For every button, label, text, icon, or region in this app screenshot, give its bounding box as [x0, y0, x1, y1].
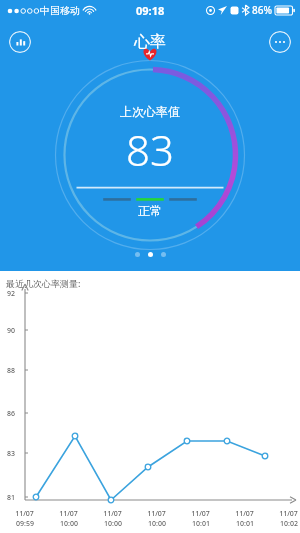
staticText: 86%	[252, 3, 272, 17]
staticText: 11/07	[235, 509, 254, 519]
button[interactable]: More options	[269, 31, 291, 53]
staticText: 88	[7, 366, 16, 376]
staticText: 09:18	[136, 3, 165, 18]
staticText: 11/07	[279, 509, 298, 519]
staticText: 心率	[134, 32, 166, 52]
staticText: 10:02	[280, 519, 298, 529]
staticText: 11/07	[147, 509, 166, 519]
staticText: 09:59	[16, 519, 34, 529]
staticText: 83	[7, 449, 16, 459]
staticText: 81	[7, 493, 16, 503]
staticText: 10:01	[236, 519, 254, 529]
staticText: 92	[7, 289, 16, 299]
staticText: 11/07	[59, 509, 78, 519]
staticText: 上次心率值	[120, 104, 180, 119]
button[interactable]: Statistics	[9, 31, 31, 53]
staticText: 86	[7, 409, 16, 419]
staticText: 83	[126, 121, 174, 178]
staticText: 10:00	[148, 519, 166, 529]
staticText: 中国移动	[40, 4, 80, 17]
staticText: 正常	[138, 203, 162, 218]
staticText: 11/07	[103, 509, 122, 519]
staticText: 10:00	[60, 519, 78, 529]
staticText: 10:00	[104, 519, 122, 529]
staticText: 10:01	[192, 519, 210, 529]
staticText: 11/07	[191, 509, 210, 519]
staticText: 11/07	[15, 509, 34, 519]
staticText: 最近几次心率测量:	[6, 277, 81, 289]
staticText: 90	[7, 326, 16, 336]
